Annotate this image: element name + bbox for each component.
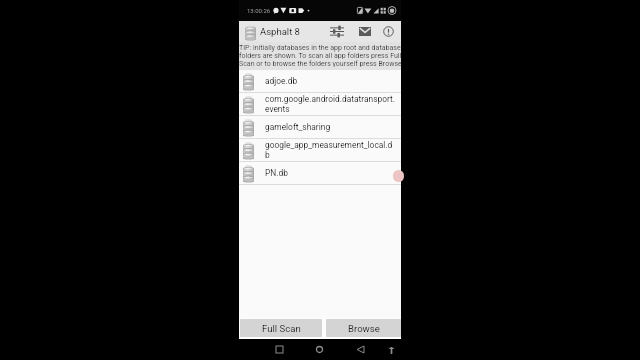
button[interactable]: Settings — [325, 21, 349, 42]
button[interactable]: gameloft_sharing — [239, 116, 401, 139]
button[interactable]: Info — [378, 21, 399, 42]
staticText: google_app_measurement_local.d — [265, 140, 393, 150]
staticText: gameloft_sharing — [265, 122, 331, 132]
button[interactable]: PN.db — [239, 162, 401, 185]
button[interactable]: App icon — [244, 24, 256, 40]
staticText: 13:00:26 — [247, 7, 271, 14]
button[interactable]: com.google.android.datatransport. — [239, 93, 401, 116]
button[interactable]: Full Scan — [240, 319, 322, 337]
staticText: b — [265, 150, 270, 160]
staticText: folders are shown. To scan all app folde… — [239, 51, 401, 59]
button[interactable]: Browse — [326, 319, 401, 337]
staticText: PN.db — [265, 168, 288, 178]
staticText: com.google.android.datatransport. — [265, 94, 395, 104]
button[interactable]: Back — [352, 339, 368, 360]
staticText: Asphalt 8 — [260, 26, 300, 37]
staticText: Full Scan — [262, 323, 301, 334]
button[interactable]: Input method — [383, 339, 399, 360]
staticText: Scan or to browse the folders yourself p… — [239, 59, 401, 67]
staticText: events — [265, 104, 290, 114]
button[interactable]: Recents — [271, 339, 287, 360]
button[interactable]: Mail — [353, 21, 376, 42]
button[interactable]: google_app_measurement_local.d — [239, 139, 401, 162]
staticText: adjoe.db — [265, 76, 298, 86]
button[interactable]: Home — [311, 339, 327, 360]
button[interactable]: adjoe.db — [239, 70, 401, 93]
staticText: Browse — [348, 323, 380, 334]
staticText: TIP: initially databases in the app root… — [239, 43, 401, 51]
